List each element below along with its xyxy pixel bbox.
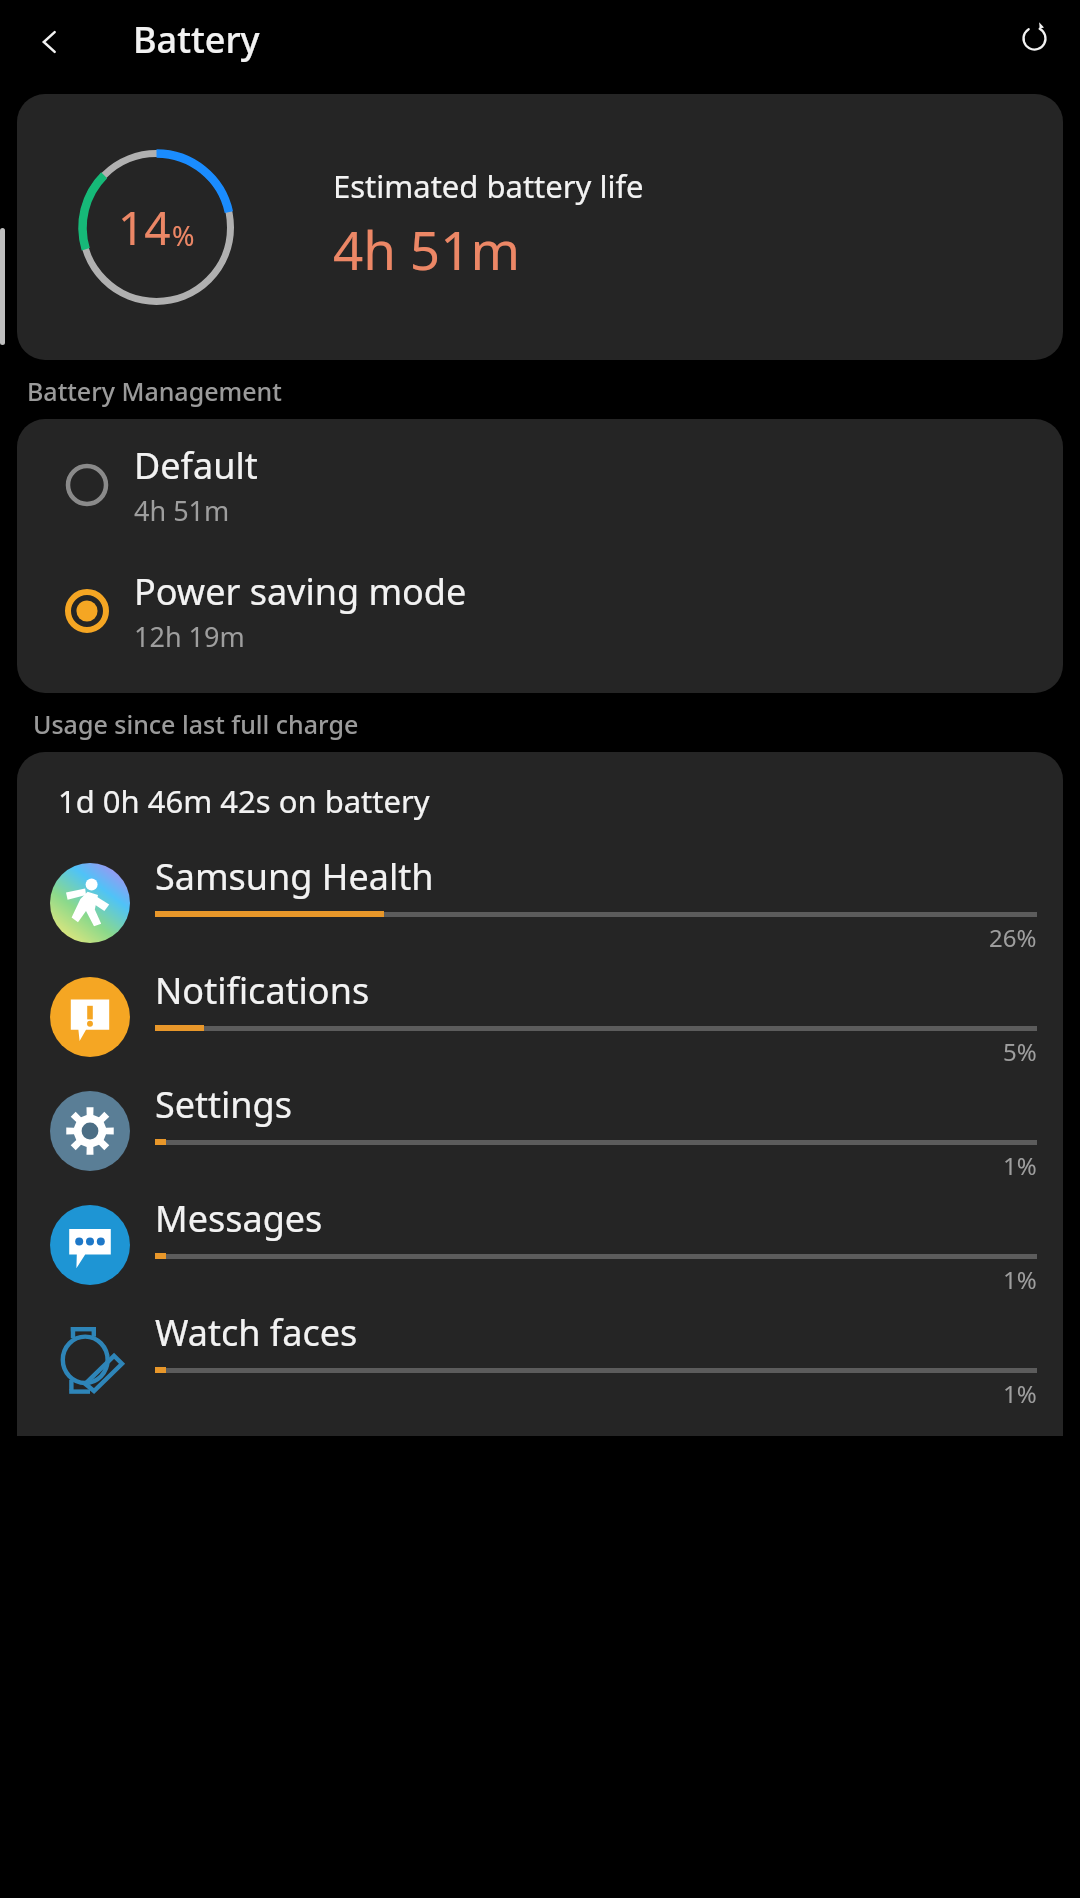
staticText: Samsung Health	[155, 852, 434, 901]
button[interactable]: Settings	[17, 1074, 1063, 1188]
staticText: Watch faces	[155, 1308, 358, 1357]
staticText: 14	[118, 196, 171, 259]
staticText: 26%	[989, 921, 1037, 954]
staticText: Settings	[155, 1080, 292, 1129]
staticText: Notifications	[155, 966, 370, 1015]
staticText: Battery	[133, 15, 260, 64]
button[interactable]: Watch faces	[17, 1302, 1063, 1416]
staticText: 4h 51m	[333, 213, 521, 285]
staticText: 1%	[1003, 1149, 1037, 1182]
staticText: Power saving mode	[134, 567, 467, 616]
staticText: Messages	[155, 1194, 323, 1243]
staticText: Estimated battery life	[333, 165, 644, 207]
staticText: 4h 51m	[134, 492, 230, 529]
button[interactable]: Power saving mode	[17, 561, 1063, 661]
staticText: 5%	[1003, 1035, 1037, 1068]
button[interactable]: Messages	[17, 1188, 1063, 1302]
staticText: Usage since last full charge	[33, 707, 359, 741]
staticText: %	[172, 217, 195, 254]
staticText: 12h 19m	[134, 618, 245, 655]
button[interactable]: Refresh	[1006, 10, 1062, 66]
button[interactable]: Samsung Health	[17, 846, 1063, 960]
staticText: Battery Management	[27, 374, 282, 408]
staticText: Default	[134, 441, 258, 490]
button[interactable]: 14	[17, 94, 1063, 360]
button[interactable]: Default	[17, 435, 1063, 535]
button[interactable]: Notifications	[17, 960, 1063, 1074]
staticText: 1d 0h 46m 42s on battery	[58, 780, 430, 822]
staticText: 1%	[1003, 1377, 1037, 1410]
staticText: 1%	[1003, 1263, 1037, 1296]
button[interactable]: Back	[22, 14, 78, 70]
